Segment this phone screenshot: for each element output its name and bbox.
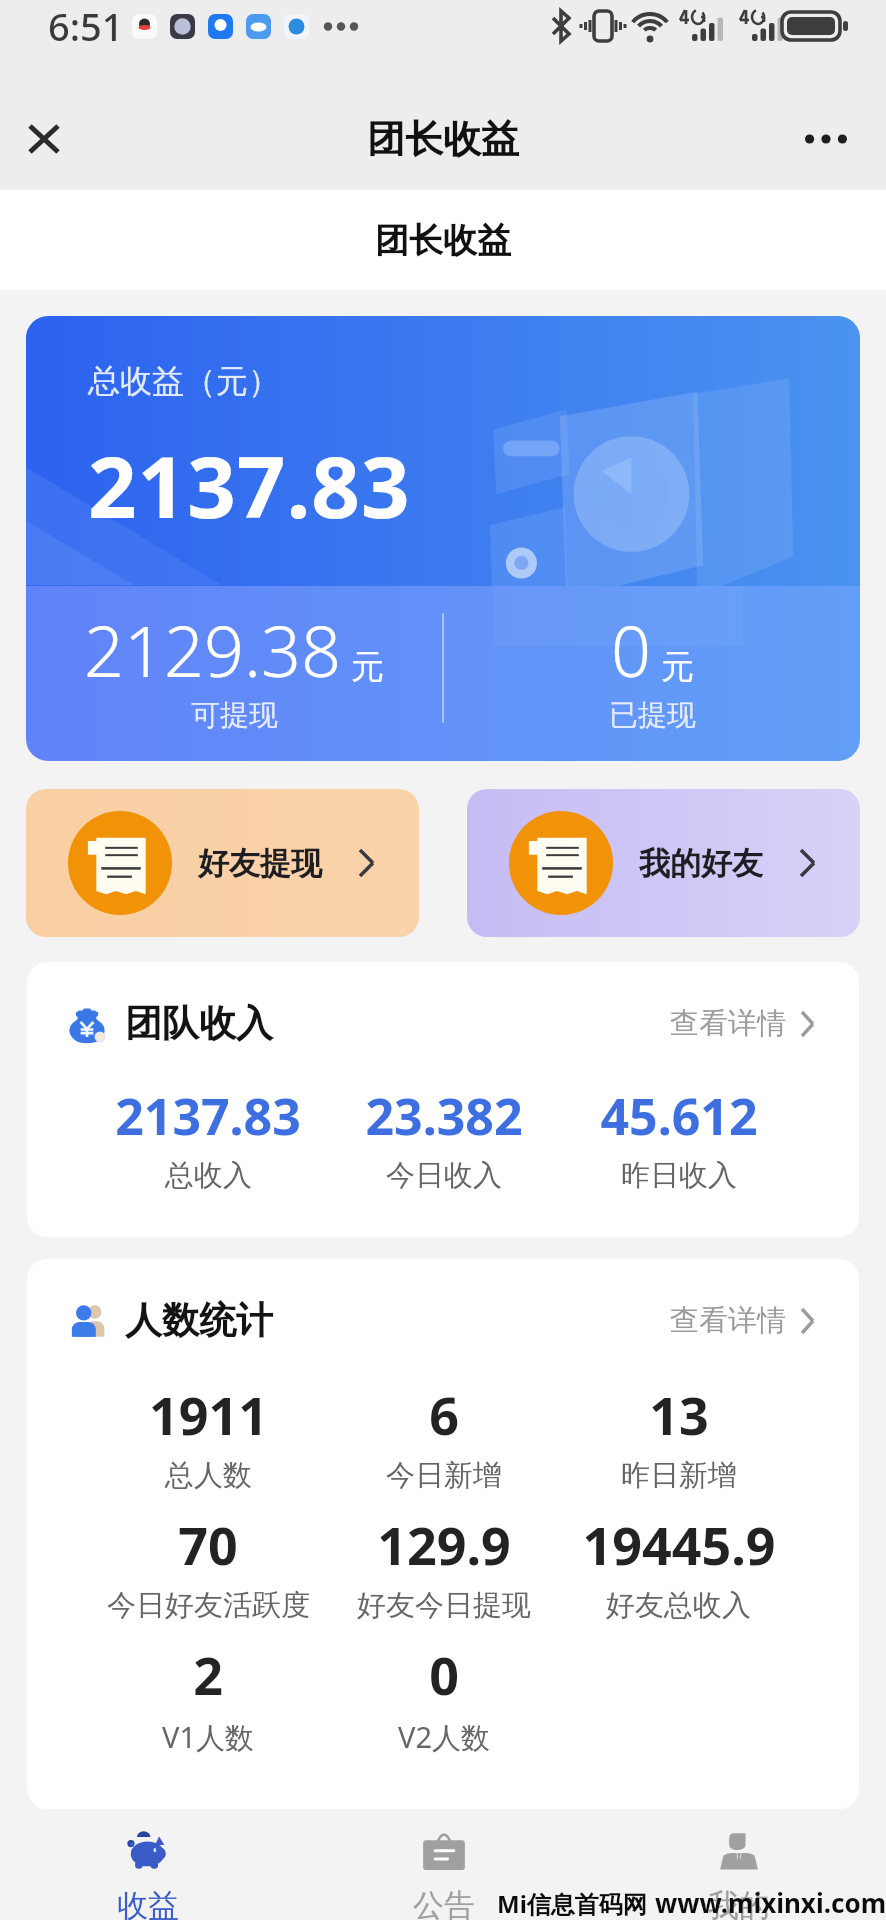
staticText: 总收益（元） bbox=[88, 361, 280, 401]
staticText: 6:51 bbox=[48, 0, 124, 52]
staticText: 人数统计 bbox=[125, 1297, 273, 1344]
staticText: 昨日新增 bbox=[621, 1457, 737, 1494]
staticText: 总收入 bbox=[165, 1157, 252, 1194]
staticText: 已提现 bbox=[609, 697, 696, 734]
staticText: 可提现 bbox=[191, 697, 278, 734]
button[interactable]: 总收益（元） bbox=[26, 316, 860, 761]
staticText: 查看详情 bbox=[670, 1005, 786, 1042]
staticText: 今日好友活跃度 bbox=[107, 1587, 310, 1624]
button[interactable]: 好友提现 bbox=[26, 789, 419, 937]
button[interactable]: 公告 bbox=[296, 1809, 591, 1920]
staticText: V2人数 bbox=[398, 1717, 490, 1757]
staticText: 0 bbox=[429, 1639, 459, 1710]
staticText: V1人数 bbox=[162, 1717, 254, 1757]
staticText: www.mixinxi.com bbox=[655, 1885, 886, 1920]
staticText: 今日收入 bbox=[386, 1157, 502, 1194]
staticText: 公告 bbox=[413, 1886, 475, 1920]
staticText: 23.382 bbox=[365, 1082, 523, 1150]
staticText: 2129.38 bbox=[84, 602, 341, 697]
staticText: 元 bbox=[351, 646, 384, 688]
staticText: 我的好友 bbox=[639, 844, 763, 883]
button[interactable]: 查看详情 bbox=[662, 1294, 823, 1347]
staticText: 45.612 bbox=[600, 1082, 758, 1150]
staticText: Mi信息首码网 bbox=[497, 1887, 647, 1920]
button[interactable]: 我的 bbox=[591, 1809, 886, 1920]
staticText: 129.9 bbox=[377, 1509, 511, 1580]
button[interactable]: Close bbox=[8, 103, 80, 175]
button[interactable]: More options bbox=[790, 103, 862, 175]
staticText: 好友今日提现 bbox=[357, 1587, 531, 1624]
staticText: 团长收益 bbox=[375, 219, 511, 262]
staticText: 0 bbox=[611, 602, 651, 697]
staticText: 好友总收入 bbox=[606, 1587, 751, 1624]
staticText: 昨日收入 bbox=[621, 1157, 737, 1194]
staticText: 总人数 bbox=[165, 1457, 252, 1494]
staticText: 我的 bbox=[708, 1886, 770, 1920]
staticText: 2 bbox=[193, 1639, 223, 1710]
staticText: 查看详情 bbox=[670, 1302, 786, 1339]
button[interactable]: 查看详情 bbox=[662, 997, 823, 1050]
staticText: 1911 bbox=[149, 1379, 268, 1450]
staticText: 元 bbox=[661, 646, 694, 688]
staticText: 19445.9 bbox=[582, 1509, 776, 1580]
staticText: 团队收入 bbox=[125, 1000, 273, 1047]
button[interactable]: 收益 bbox=[0, 1809, 296, 1920]
staticText: 2137.83 bbox=[88, 427, 411, 543]
staticText: 6 bbox=[429, 1379, 459, 1450]
staticText: 2137.83 bbox=[115, 1082, 301, 1150]
staticText: 13 bbox=[649, 1379, 709, 1450]
staticText: 今日新增 bbox=[386, 1457, 502, 1494]
staticText: 70 bbox=[178, 1509, 238, 1580]
button[interactable]: 我的好友 bbox=[467, 789, 860, 937]
staticText: 团长收益 bbox=[367, 115, 519, 163]
staticText: 好友提现 bbox=[198, 844, 322, 883]
staticText: 收益 bbox=[117, 1886, 179, 1920]
